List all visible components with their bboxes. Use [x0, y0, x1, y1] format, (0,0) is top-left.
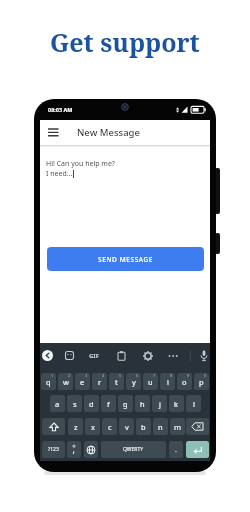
staticText: l: [193, 399, 195, 409]
staticText: q: [46, 377, 51, 387]
button[interactable]: h: [135, 395, 150, 412]
staticText: 6: [136, 373, 139, 378]
staticText: Get support: [50, 25, 200, 59]
staticText: 2: [68, 373, 71, 378]
staticText: 4: [102, 373, 105, 378]
button[interactable]: New Message: [40, 120, 210, 145]
button[interactable]: [42, 418, 65, 435]
staticText: e: [80, 377, 85, 387]
button[interactable]: [67, 441, 81, 458]
staticText: z: [74, 422, 78, 432]
staticText: h: [140, 399, 145, 409]
button[interactable]: c: [102, 418, 117, 435]
staticText: w: [63, 377, 69, 387]
staticText: g: [123, 399, 128, 409]
staticText: .: [175, 445, 177, 455]
button[interactable]: y: [126, 373, 141, 390]
staticText: r: [98, 377, 102, 387]
button[interactable]: p: [194, 373, 209, 390]
button[interactable]: .: [169, 441, 183, 458]
staticText: o: [182, 377, 187, 387]
staticText: 1: [51, 373, 54, 378]
button[interactable]: v: [119, 418, 134, 435]
staticText: k: [174, 399, 179, 409]
staticText: 08:03 AM: [48, 106, 73, 113]
button[interactable]: [84, 441, 98, 458]
staticText: GIF: [89, 352, 99, 360]
button[interactable]: [186, 441, 209, 458]
staticText: c: [108, 422, 112, 432]
button[interactable]: [42, 350, 53, 361]
staticText: 3: [85, 373, 88, 378]
button[interactable]: t: [109, 373, 124, 390]
button[interactable]: u: [143, 373, 158, 390]
button[interactable]: w: [58, 373, 73, 390]
staticText: f: [107, 399, 110, 409]
staticText: y: [132, 377, 136, 387]
staticText: Hi! Can you help me?: [46, 159, 115, 169]
staticText: 0: [204, 373, 207, 378]
button[interactable]: g: [118, 395, 133, 412]
button[interactable]: x: [85, 418, 100, 435]
button[interactable]: ?123: [42, 441, 65, 458]
staticText: 9: [187, 373, 190, 378]
button[interactable]: [186, 418, 209, 435]
button[interactable]: k: [169, 395, 184, 412]
button[interactable]: f: [101, 395, 116, 412]
staticText: v: [125, 422, 129, 432]
button[interactable]: b: [136, 418, 151, 435]
staticText: s: [73, 399, 77, 409]
staticText: m: [174, 422, 182, 432]
staticText: b: [141, 422, 146, 432]
staticText: n: [158, 422, 163, 432]
button[interactable]: q: [41, 373, 56, 390]
staticText: t: [115, 377, 118, 387]
staticText: 8: [170, 373, 173, 378]
button[interactable]: e: [75, 373, 90, 390]
button[interactable]: SEND MESSAGE: [47, 247, 204, 271]
button[interactable]: s: [67, 395, 82, 412]
staticText: 7: [153, 373, 156, 378]
button[interactable]: o: [177, 373, 192, 390]
button[interactable]: n: [153, 418, 168, 435]
button[interactable]: j: [152, 395, 167, 412]
staticText: j: [159, 399, 161, 409]
staticText: I need...: [46, 169, 73, 179]
staticText: SEND MESSAGE: [98, 255, 154, 264]
staticText: ?123: [48, 446, 59, 453]
staticText: QWERTY: [123, 446, 144, 453]
staticText: u: [148, 377, 153, 387]
staticText: a: [55, 399, 60, 409]
staticText: d: [89, 399, 94, 409]
staticText: p: [199, 377, 204, 387]
button[interactable]: r: [92, 373, 107, 390]
staticText: 5: [119, 373, 122, 378]
button[interactable]: d: [84, 395, 99, 412]
button[interactable]: z: [68, 418, 83, 435]
button[interactable]: i: [160, 373, 175, 390]
button[interactable]: l: [186, 395, 201, 412]
staticText: i: [167, 377, 169, 387]
button[interactable]: m: [170, 418, 185, 435]
staticText: x: [91, 422, 95, 432]
button[interactable]: QWERTY: [101, 441, 166, 458]
staticText: New Message: [77, 126, 140, 139]
button[interactable]: a: [50, 395, 65, 412]
